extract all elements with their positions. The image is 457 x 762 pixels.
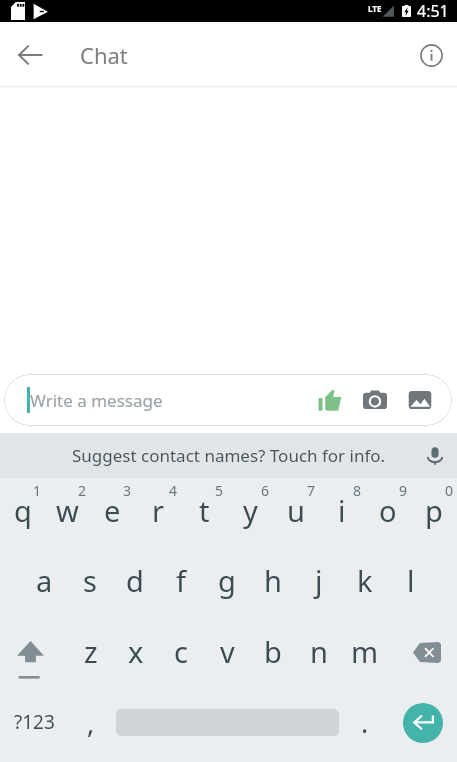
staticText: a bbox=[36, 561, 53, 600]
staticText: 0 bbox=[445, 481, 454, 500]
button[interactable]: j bbox=[296, 549, 342, 620]
staticText: . bbox=[361, 704, 369, 741]
staticText: d bbox=[126, 561, 144, 600]
button[interactable]: f bbox=[158, 549, 204, 620]
staticText: l bbox=[407, 561, 415, 600]
button[interactable]: 3 bbox=[90, 478, 135, 549]
staticText: c bbox=[174, 632, 188, 671]
staticText: g bbox=[218, 561, 236, 600]
staticText: 2 bbox=[78, 481, 87, 500]
button[interactable]: Backspace bbox=[388, 620, 457, 691]
staticText: v bbox=[220, 632, 235, 671]
button[interactable]: 1 bbox=[0, 478, 45, 549]
button[interactable]: Conversation details bbox=[401, 27, 457, 83]
button[interactable]: , bbox=[68, 691, 113, 762]
staticText: 7 bbox=[307, 481, 316, 500]
staticText: t bbox=[199, 491, 210, 530]
staticText: 6 bbox=[261, 481, 270, 500]
staticText: j bbox=[315, 561, 323, 600]
staticText: f bbox=[176, 561, 186, 600]
staticText: b bbox=[264, 632, 282, 671]
staticText: ?123 bbox=[14, 709, 55, 735]
staticText: 3 bbox=[123, 481, 132, 500]
button[interactable]: z bbox=[68, 620, 113, 691]
button[interactable]: 5 bbox=[181, 478, 227, 549]
button[interactable]: n bbox=[296, 620, 342, 691]
button[interactable]: Enter bbox=[388, 691, 457, 762]
staticText: 4:51 bbox=[417, 0, 449, 22]
button[interactable]: x bbox=[113, 620, 158, 691]
button[interactable]: Take photo bbox=[355, 380, 395, 420]
button[interactable]: a bbox=[22, 549, 67, 620]
staticText: 9 bbox=[399, 481, 408, 500]
button[interactable]: 0 bbox=[411, 478, 457, 549]
staticText: u bbox=[287, 491, 305, 530]
button[interactable]: k bbox=[342, 549, 388, 620]
button[interactable]: v bbox=[204, 620, 250, 691]
button[interactable]: m bbox=[342, 620, 388, 691]
button[interactable]: l bbox=[388, 549, 434, 620]
button[interactable]: Shift bbox=[0, 620, 68, 691]
button[interactable]: ?123 bbox=[0, 691, 68, 762]
button[interactable]: g bbox=[204, 549, 250, 620]
staticText: y bbox=[243, 491, 258, 530]
staticText: Suggest contact names? Touch for info. bbox=[72, 444, 386, 467]
button[interactable]: 9 bbox=[365, 478, 411, 549]
button[interactable]: Back bbox=[2, 27, 58, 83]
button[interactable]: Voice input bbox=[413, 433, 457, 478]
button[interactable]: h bbox=[250, 549, 296, 620]
staticText: 8 bbox=[353, 481, 362, 500]
staticText: 5 bbox=[215, 481, 224, 500]
button[interactable]: Send a like bbox=[310, 380, 350, 420]
button[interactable]: 2 bbox=[45, 478, 90, 549]
staticText: e bbox=[104, 491, 121, 530]
staticText: p bbox=[425, 491, 443, 530]
staticText: h bbox=[264, 561, 282, 600]
staticText: x bbox=[128, 632, 144, 671]
staticText: Write a message bbox=[30, 389, 163, 412]
button[interactable]: d bbox=[112, 549, 158, 620]
staticText: Chat bbox=[80, 40, 128, 70]
button[interactable]: 6 bbox=[227, 478, 273, 549]
button[interactable]: 8 bbox=[319, 478, 365, 549]
button[interactable]: 4 bbox=[135, 478, 181, 549]
staticText: z bbox=[84, 632, 98, 671]
button[interactable]: Suggest contact names? Touch for info. bbox=[0, 433, 457, 478]
button[interactable]: b bbox=[250, 620, 296, 691]
staticText: , bbox=[87, 704, 95, 741]
staticText: o bbox=[379, 491, 397, 530]
staticText: m bbox=[351, 632, 379, 671]
button[interactable]: c bbox=[158, 620, 204, 691]
button[interactable]: Space bbox=[113, 691, 342, 762]
button[interactable]: . bbox=[342, 691, 388, 762]
button[interactable]: 7 bbox=[273, 478, 319, 549]
staticText: w bbox=[56, 491, 79, 530]
button[interactable]: s bbox=[67, 549, 112, 620]
staticText: s bbox=[83, 561, 97, 600]
staticText: r bbox=[152, 491, 164, 530]
staticText: n bbox=[310, 632, 328, 671]
staticText: 4 bbox=[169, 481, 178, 500]
staticText: LTE bbox=[368, 3, 382, 14]
staticText: i bbox=[338, 491, 346, 530]
staticText: 1 bbox=[33, 481, 42, 500]
staticText: k bbox=[357, 561, 373, 600]
staticText: q bbox=[14, 491, 32, 530]
button[interactable]: Attach image bbox=[400, 380, 440, 420]
